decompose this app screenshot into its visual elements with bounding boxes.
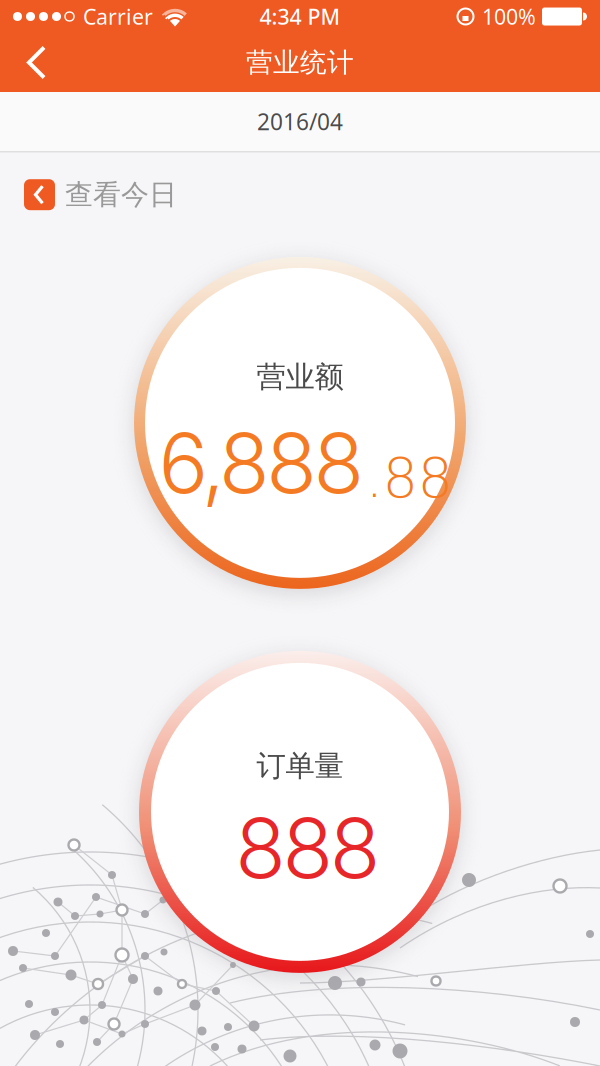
staticText: 100%: [482, 2, 536, 31]
staticText: 2016/04: [257, 106, 343, 136]
staticText: 6,888: [158, 413, 365, 513]
button[interactable]: 查看今日: [24, 177, 177, 212]
staticText: 订单量: [256, 748, 343, 784]
staticText: 查看今日: [65, 177, 177, 212]
staticText: 4:34 PM: [259, 2, 340, 31]
staticText: .88: [366, 445, 454, 510]
button[interactable]: Back: [0, 33, 57, 91]
staticText: 营业额: [256, 359, 343, 395]
staticText: 营业统计: [246, 46, 354, 79]
staticText: 888: [235, 798, 381, 898]
button[interactable]: 2016/04: [0, 92, 600, 151]
staticText: Carrier: [83, 2, 153, 31]
